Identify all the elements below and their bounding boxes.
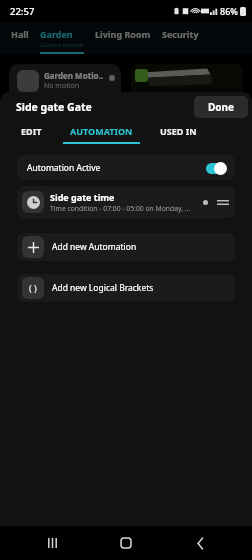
button[interactable]: Side gate time — [17, 186, 235, 218]
staticText: Side gate time — [50, 191, 115, 203]
staticText: No motion — [44, 81, 80, 91]
staticText: Add new Logical Brackets — [52, 282, 154, 294]
staticText: Automation Active — [27, 162, 101, 174]
button[interactable]: Garden Motio.. — [9, 64, 121, 108]
staticText: Garden — [40, 28, 73, 40]
staticText: Garden Motio.. — [44, 70, 104, 81]
staticText: Security — [162, 28, 199, 40]
staticText: Done — [208, 100, 235, 114]
staticText: USED IN — [160, 125, 197, 137]
button[interactable]: AUTOMATION — [63, 122, 140, 144]
staticText: Side gate Gate — [16, 100, 92, 114]
button[interactable]: ( ) — [17, 274, 235, 302]
staticText: Hall — [11, 28, 29, 40]
button[interactable]: Living Room — [84, 22, 151, 40]
staticText: Add new Automation — [52, 241, 137, 253]
button[interactable]: USED IN — [140, 122, 217, 144]
staticText: AUTOMATION — [70, 125, 133, 137]
staticText: Time condition - 07:00 - 05:00 on Monday… — [50, 204, 191, 213]
staticText: EDIT — [21, 125, 42, 137]
button[interactable]: Recents — [30, 526, 74, 560]
button[interactable]: Add new Automation — [17, 233, 235, 261]
button[interactable] — [131, 64, 243, 108]
staticText: 86% — [220, 5, 238, 17]
button[interactable]: Done — [194, 96, 248, 118]
button[interactable]: Home — [104, 526, 148, 560]
staticText: ( ) — [29, 282, 37, 294]
staticText: Garden motion — [40, 41, 84, 49]
button[interactable]: Security — [151, 22, 199, 40]
staticText: Living Room — [95, 28, 151, 40]
button[interactable]: Back — [178, 526, 222, 560]
button[interactable]: Automation Active — [17, 155, 235, 180]
button[interactable]: EDIT — [0, 122, 63, 144]
button[interactable]: Garden — [29, 22, 84, 54]
staticText: 22:57 — [10, 5, 35, 18]
button[interactable]: Hall — [0, 22, 29, 40]
